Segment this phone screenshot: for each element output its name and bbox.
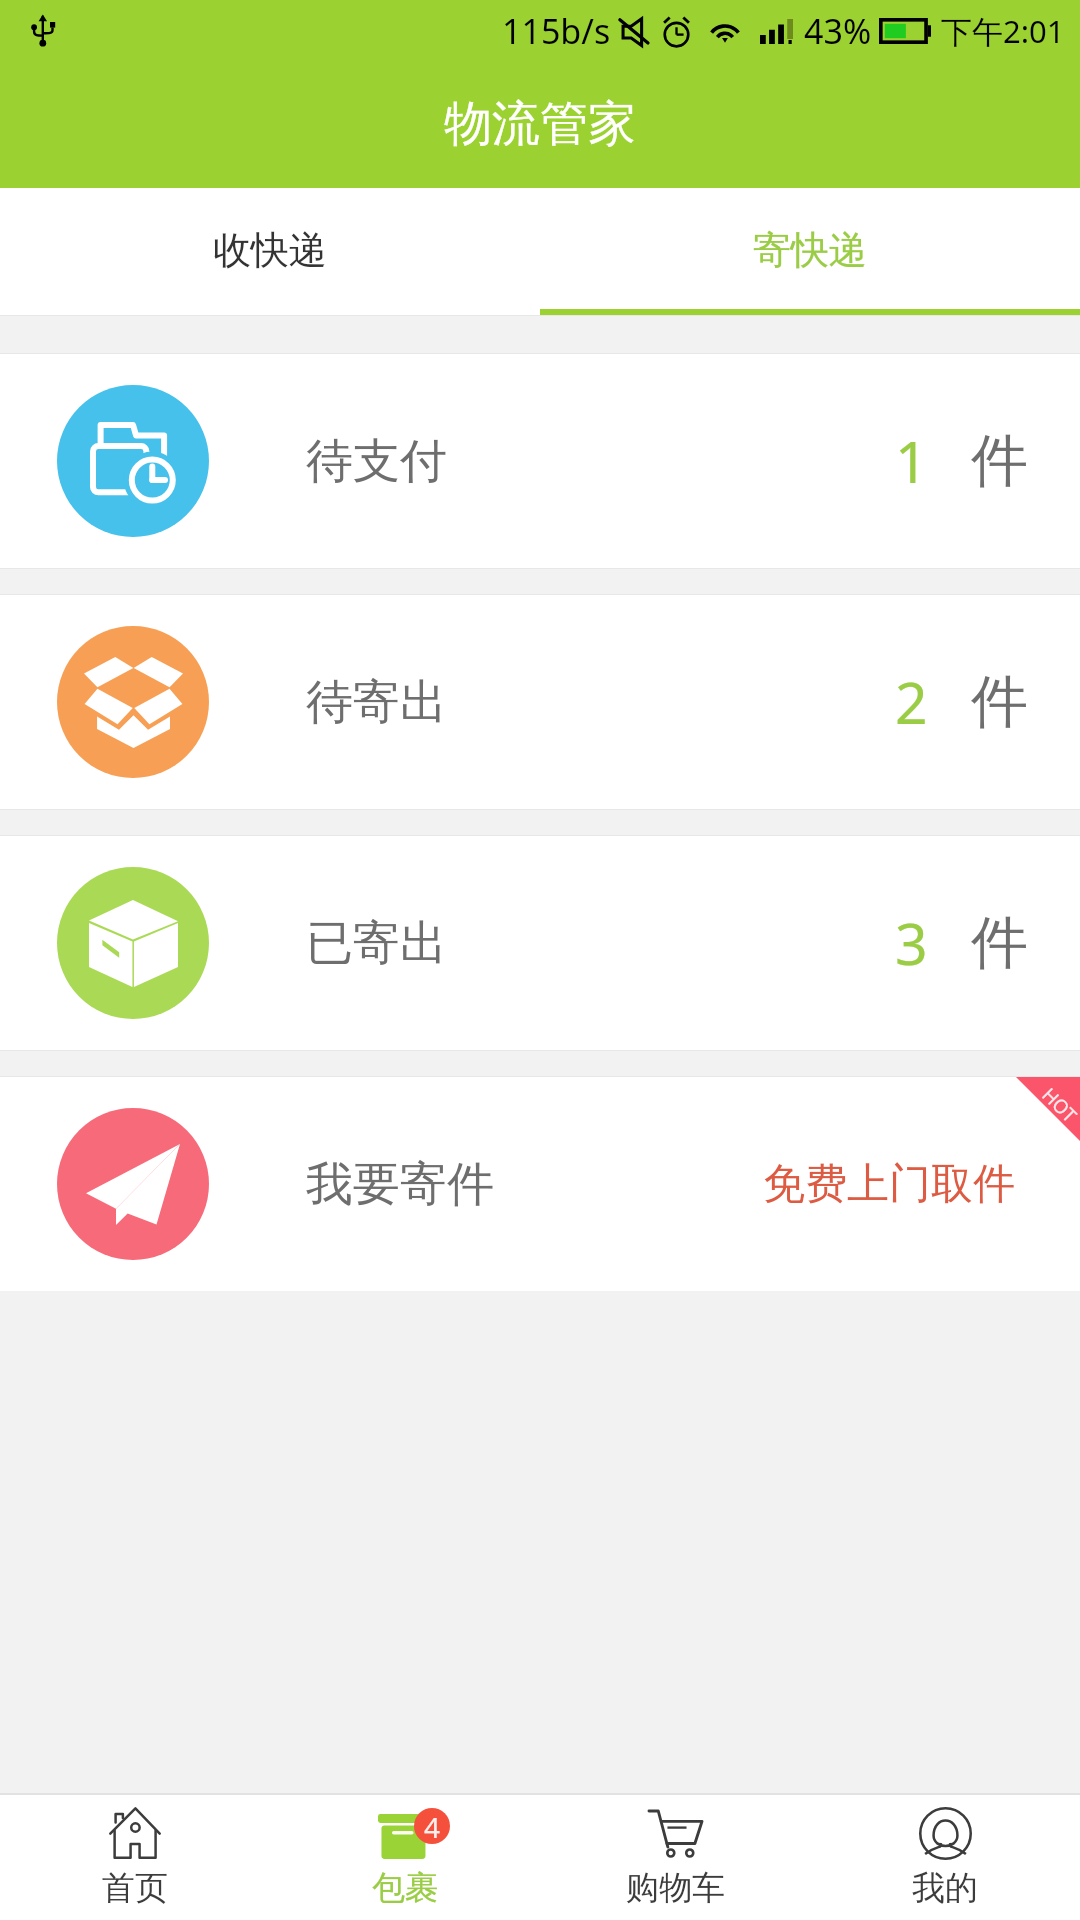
- staticText: 43%: [804, 8, 872, 54]
- staticText: 件: [971, 907, 1028, 979]
- staticText: 件: [971, 425, 1028, 497]
- button[interactable]: 待支付: [0, 354, 1080, 568]
- staticText: 待支付: [306, 432, 447, 491]
- staticText: 包裹: [372, 1867, 438, 1909]
- staticText: 收快递: [213, 226, 327, 274]
- staticText: 购物车: [626, 1867, 725, 1909]
- staticText: 3: [895, 904, 928, 982]
- staticText: 物流管家: [444, 94, 636, 154]
- staticText: 件: [971, 666, 1028, 738]
- staticText: 2: [895, 663, 928, 741]
- button[interactable]: 已寄出: [0, 836, 1080, 1050]
- staticText: 4: [424, 1808, 441, 1844]
- staticText: 首页: [102, 1867, 168, 1909]
- staticText: 115b/s: [502, 8, 611, 54]
- button[interactable]: 购物车: [540, 1795, 810, 1920]
- staticText: 免费上门取件: [763, 1158, 1015, 1211]
- staticText: 下午2:01: [941, 10, 1065, 52]
- staticText: HOT: [1036, 1082, 1080, 1128]
- staticText: 寄快递: [753, 226, 867, 274]
- button[interactable]: 寄快递: [540, 188, 1080, 315]
- staticText: 我的: [912, 1867, 978, 1909]
- button[interactable]: 我的: [810, 1795, 1080, 1920]
- staticText: 我要寄件: [306, 1155, 494, 1214]
- staticText: 待寄出: [306, 673, 447, 732]
- button[interactable]: 4: [270, 1795, 540, 1920]
- button[interactable]: 收快递: [0, 188, 540, 315]
- staticText: 已寄出: [306, 914, 447, 973]
- staticText: 1: [895, 422, 928, 500]
- button[interactable]: 首页: [0, 1795, 270, 1920]
- button[interactable]: 我要寄件: [0, 1077, 1080, 1291]
- button[interactable]: 待寄出: [0, 595, 1080, 809]
